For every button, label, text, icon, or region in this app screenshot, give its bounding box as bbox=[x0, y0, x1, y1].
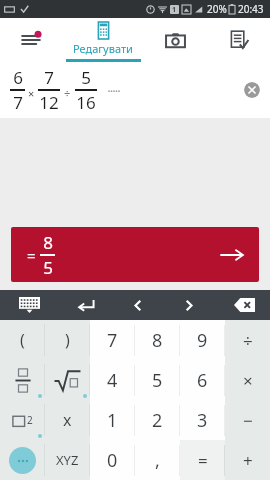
button[interactable]: x bbox=[45, 400, 90, 440]
button[interactable]: ÷ bbox=[225, 320, 270, 360]
staticText: ( bbox=[20, 329, 25, 351]
button[interactable]: 3 bbox=[180, 400, 225, 440]
staticText: XYZ bbox=[56, 451, 79, 469]
staticText: − bbox=[243, 409, 253, 432]
button[interactable]: Previous bbox=[113, 290, 163, 320]
button[interactable]: = bbox=[180, 440, 225, 480]
staticText: × bbox=[28, 86, 35, 101]
staticText: 5 bbox=[152, 368, 163, 393]
staticText: 2 bbox=[152, 408, 163, 433]
button[interactable]: Backspace bbox=[218, 290, 270, 320]
staticText: 0 bbox=[107, 448, 118, 473]
button[interactable]: Fraction bbox=[0, 360, 45, 400]
button[interactable]: 6 bbox=[180, 360, 225, 400]
button[interactable]: Power bbox=[0, 400, 45, 440]
staticText: ÷ bbox=[243, 329, 253, 352]
button[interactable]: Square root bbox=[45, 360, 90, 400]
button[interactable]: Next bbox=[219, 242, 245, 268]
staticText: 1 bbox=[172, 5, 177, 14]
button[interactable]: = bbox=[11, 227, 259, 282]
staticText: , bbox=[155, 448, 160, 473]
button[interactable]: XYZ bbox=[45, 440, 90, 480]
button[interactable]: 4 bbox=[90, 360, 135, 400]
staticText: 1 bbox=[107, 408, 118, 433]
button[interactable]: 1 bbox=[90, 400, 135, 440]
button[interactable]: ) bbox=[45, 320, 90, 360]
button[interactable]: More options bbox=[0, 440, 45, 480]
staticText: 9 bbox=[197, 328, 208, 353]
staticText: 8 bbox=[152, 328, 163, 353]
button[interactable]: 2 bbox=[135, 400, 180, 440]
staticText: 5 bbox=[81, 66, 91, 89]
staticText: + bbox=[243, 449, 253, 472]
button[interactable]: × bbox=[225, 360, 270, 400]
button[interactable]: 8 bbox=[135, 320, 180, 360]
staticText: 5 bbox=[43, 256, 53, 279]
staticText: 7 bbox=[44, 66, 54, 89]
button[interactable]: ( bbox=[0, 320, 45, 360]
staticText: = bbox=[27, 245, 36, 265]
staticText: 7 bbox=[13, 91, 23, 114]
staticText: Редагувати bbox=[73, 41, 133, 56]
button[interactable]: 7 bbox=[90, 320, 135, 360]
button[interactable]: Camera bbox=[144, 18, 207, 62]
staticText: ÷ bbox=[64, 86, 71, 101]
button[interactable]: 0 bbox=[90, 440, 135, 480]
button[interactable]: Menu bbox=[0, 18, 62, 62]
staticText: 6 bbox=[13, 66, 23, 89]
button[interactable]: , bbox=[135, 440, 180, 480]
staticText: ) bbox=[65, 329, 70, 351]
button[interactable]: Enter bbox=[58, 290, 113, 320]
staticText: 2 bbox=[27, 413, 33, 427]
staticText: 16 bbox=[76, 91, 96, 114]
button[interactable]: Next field bbox=[163, 290, 213, 320]
button[interactable]: 9 bbox=[180, 320, 225, 360]
staticText: 12 bbox=[39, 91, 59, 114]
staticText: = bbox=[198, 449, 208, 472]
staticText: 3 bbox=[197, 408, 208, 433]
button[interactable]: 5 bbox=[135, 360, 180, 400]
staticText: 4 bbox=[107, 368, 118, 393]
staticText: 8 bbox=[43, 231, 53, 254]
button[interactable]: + bbox=[225, 440, 270, 480]
staticText: 7 bbox=[107, 328, 118, 353]
staticText: 20% bbox=[207, 2, 227, 16]
staticText: 20:43 bbox=[238, 2, 264, 16]
button[interactable]: Clear bbox=[244, 82, 260, 98]
staticText: × bbox=[243, 369, 253, 392]
button[interactable]: Results bbox=[207, 18, 270, 62]
button[interactable]: − bbox=[225, 400, 270, 440]
button[interactable]: Hide keyboard bbox=[0, 290, 58, 320]
button[interactable]: Редагувати bbox=[62, 18, 144, 62]
staticText: 6 bbox=[197, 368, 208, 393]
staticText: x bbox=[63, 409, 72, 431]
